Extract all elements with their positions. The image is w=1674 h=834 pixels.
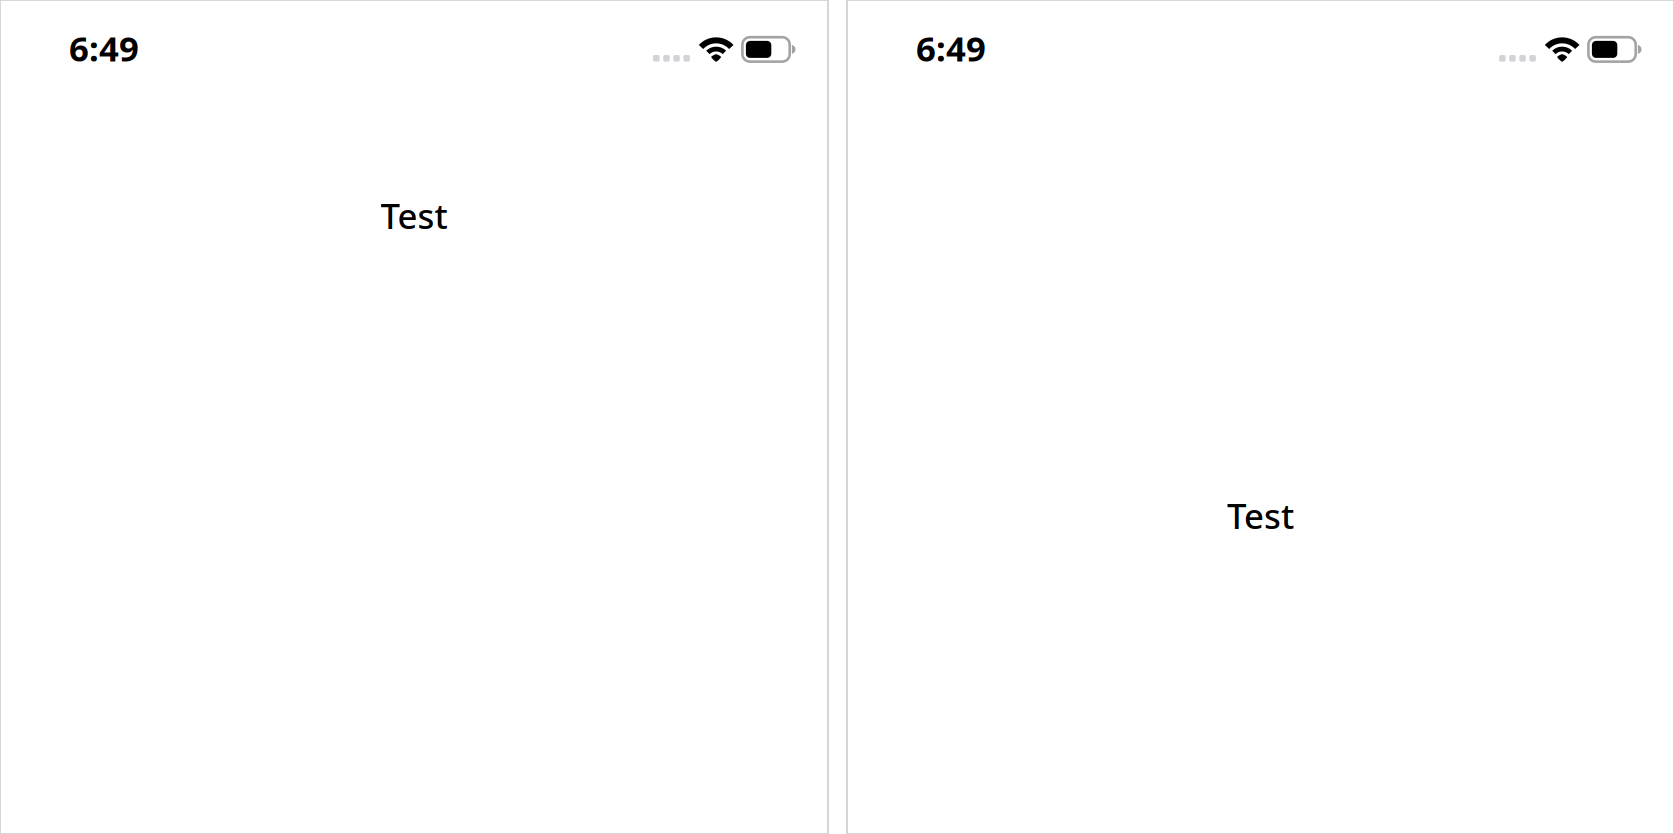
staticText: Test [1227, 492, 1294, 538]
staticText: Test [380, 192, 447, 238]
staticText: 6:49 [916, 25, 986, 71]
staticText: 6:49 [69, 25, 139, 71]
